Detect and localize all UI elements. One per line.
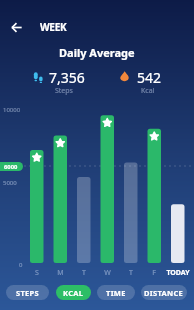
staticText: 0 (19, 261, 23, 269)
staticText: Steps (55, 86, 73, 96)
staticText: 7,356 (49, 68, 85, 87)
button[interactable]: STEPS (6, 285, 49, 300)
button[interactable]: TIME (97, 285, 135, 300)
staticText: WEEK (40, 20, 67, 34)
staticText: STEPS (16, 288, 39, 298)
staticText: Daily Average (59, 45, 135, 60)
staticText: W (104, 268, 111, 278)
staticText: Kcal (141, 86, 155, 96)
staticText: 542 (137, 68, 162, 87)
staticText: DISTANCE (144, 288, 184, 298)
staticText: S (35, 268, 39, 278)
staticText: TIME (106, 288, 126, 298)
staticText: F (152, 268, 156, 278)
staticText: T (129, 268, 133, 278)
staticText: 10000 (3, 106, 21, 114)
staticText: 5000 (3, 179, 17, 187)
staticText: M (57, 268, 64, 278)
button[interactable]: DISTANCE (141, 285, 187, 300)
staticText: TODAY (166, 268, 190, 278)
staticText: 6000 (4, 163, 18, 171)
button[interactable]: KCAL (56, 285, 91, 300)
button[interactable]: Back (4, 15, 28, 39)
staticText: KCAL (63, 288, 84, 298)
staticText: T (82, 268, 86, 278)
